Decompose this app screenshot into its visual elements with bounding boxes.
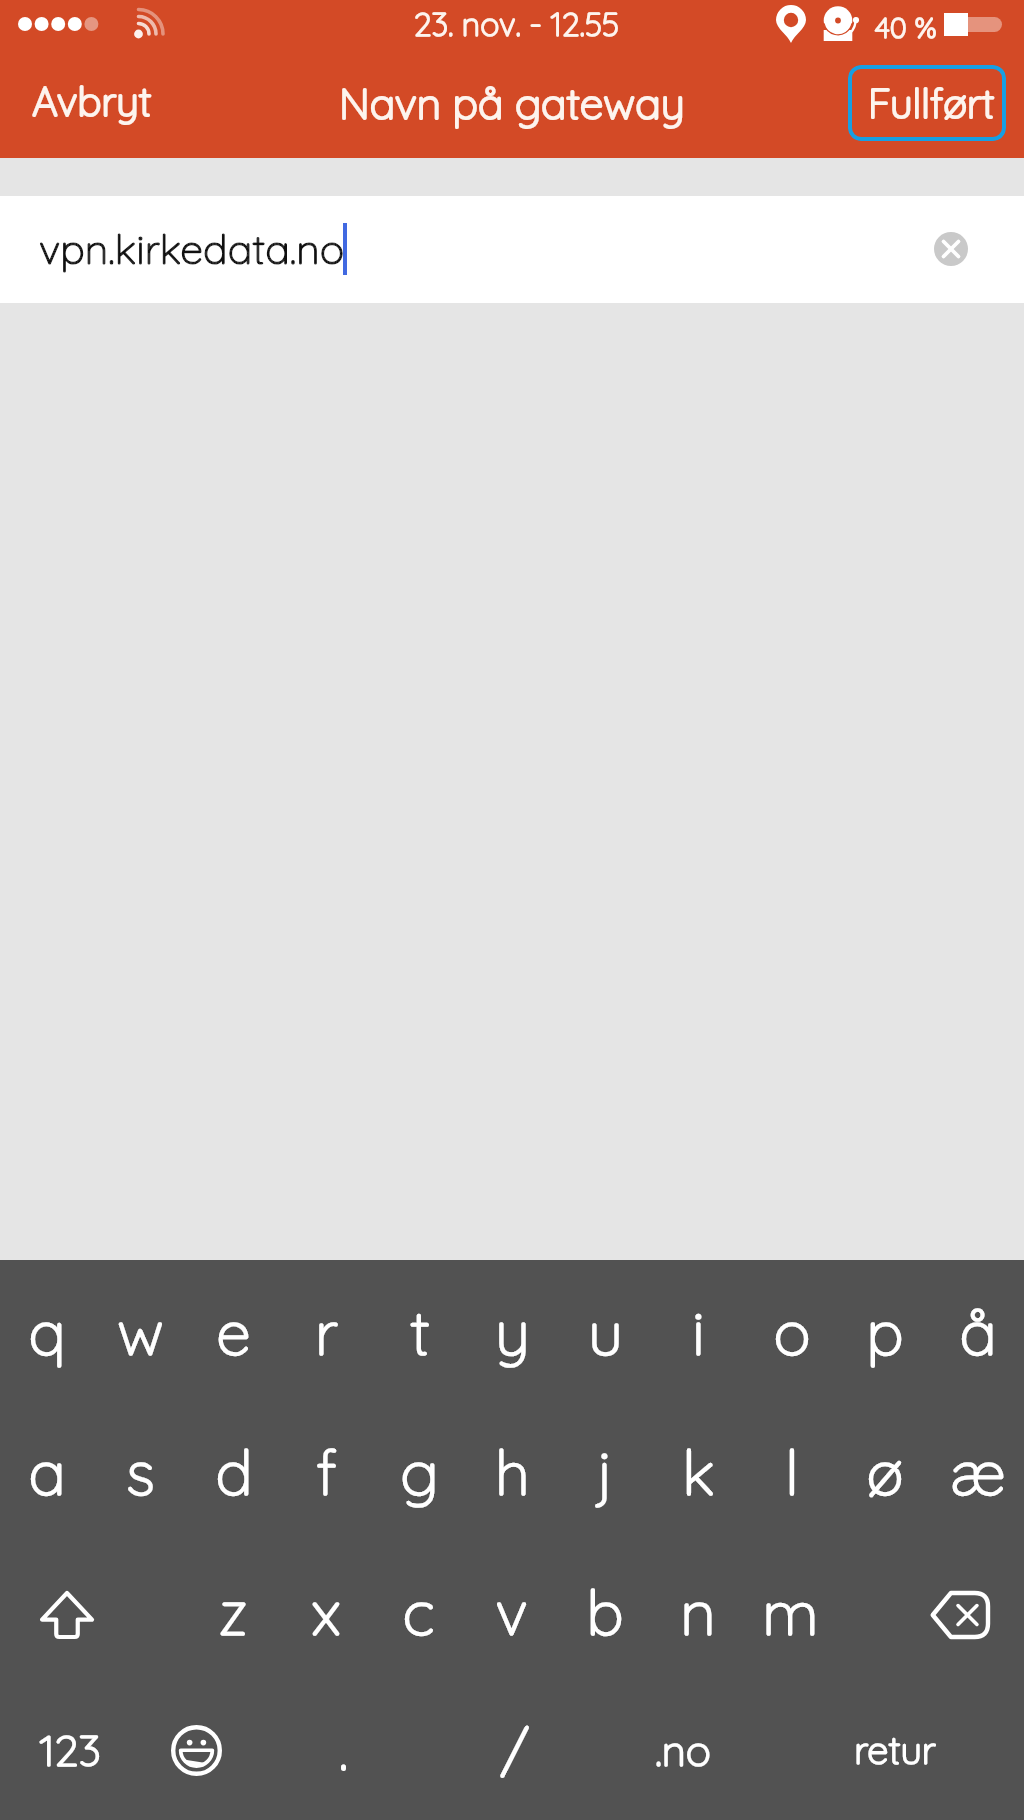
staticText: t — [410, 1293, 430, 1371]
staticText: j — [597, 1433, 614, 1511]
staticText: k — [682, 1433, 715, 1511]
button[interactable]: . — [283, 1680, 403, 1820]
button[interactable]: z — [186, 1542, 279, 1682]
button[interactable]: b — [558, 1542, 651, 1682]
button[interactable]: ø — [838, 1402, 931, 1542]
button[interactable]: s — [94, 1402, 187, 1542]
staticText: / — [501, 1716, 529, 1784]
staticText: .no — [655, 1724, 711, 1777]
staticText: Avbryt — [32, 76, 152, 126]
button[interactable]: g — [373, 1402, 466, 1542]
staticText: m — [762, 1573, 819, 1651]
button[interactable]: å — [931, 1262, 1024, 1402]
button[interactable]: k — [652, 1402, 745, 1542]
staticText: vpn.kirkedata.no — [39, 223, 345, 274]
button[interactable]: retur — [800, 1680, 990, 1820]
button[interactable]: h — [466, 1402, 559, 1542]
staticText: g — [400, 1433, 439, 1511]
staticText: å — [959, 1293, 997, 1371]
button[interactable]: q — [0, 1262, 94, 1402]
staticText: b — [586, 1573, 624, 1651]
staticText: 23. nov. - 12.55 — [414, 4, 619, 44]
staticText: o — [773, 1293, 811, 1371]
staticText: q — [28, 1293, 66, 1371]
button[interactable]: y — [466, 1262, 559, 1402]
staticText: x — [311, 1573, 341, 1651]
staticText: w — [117, 1293, 164, 1371]
staticText: retur — [854, 1726, 936, 1774]
staticText: b — [586, 1573, 624, 1651]
staticText: q — [28, 1293, 66, 1371]
staticText: a — [28, 1433, 66, 1511]
staticText: . — [339, 1716, 348, 1784]
staticText: r — [315, 1293, 338, 1371]
staticText: .no — [655, 1724, 711, 1777]
staticText: æ — [950, 1433, 1006, 1511]
button[interactable]: Emoji — [146, 1680, 246, 1820]
staticText: p — [866, 1293, 904, 1371]
button[interactable]: i — [652, 1262, 745, 1402]
staticText: Navn på gateway — [339, 76, 685, 129]
button[interactable]: m — [744, 1542, 837, 1682]
staticText: l — [785, 1433, 799, 1511]
staticText: c — [402, 1573, 435, 1651]
staticText: ø — [866, 1433, 904, 1511]
button[interactable]: Clear text — [923, 221, 979, 277]
button[interactable]: v — [465, 1542, 558, 1682]
button[interactable]: r — [280, 1262, 373, 1402]
staticText: å — [959, 1293, 997, 1371]
staticText: Avbryt — [32, 76, 152, 126]
staticText: v — [495, 1573, 528, 1651]
staticText: a — [28, 1433, 66, 1511]
button[interactable]: Shift — [0, 1540, 139, 1680]
staticText: e — [216, 1293, 251, 1371]
staticText: z — [218, 1573, 248, 1651]
staticText: w — [117, 1293, 164, 1371]
button[interactable]: j — [559, 1402, 652, 1542]
button[interactable]: .no — [610, 1680, 755, 1820]
button[interactable]: u — [559, 1262, 652, 1402]
staticText: g — [400, 1433, 439, 1511]
button[interactable]: t — [373, 1262, 466, 1402]
button[interactable]: 123 — [0, 1680, 139, 1820]
button[interactable]: Backspace — [885, 1540, 1024, 1680]
staticText: x — [311, 1573, 341, 1651]
staticText: m — [762, 1573, 819, 1651]
staticText: k — [682, 1433, 715, 1511]
staticText: f — [316, 1433, 337, 1511]
button[interactable]: / — [440, 1680, 590, 1820]
button[interactable]: æ — [931, 1402, 1024, 1542]
button[interactable]: l — [745, 1402, 838, 1542]
staticText: 40 % — [875, 9, 937, 45]
button[interactable]: d — [187, 1402, 280, 1542]
staticText: 123 — [39, 1723, 101, 1777]
staticText: ø — [866, 1433, 904, 1511]
staticText: i — [692, 1293, 705, 1371]
button[interactable]: a — [0, 1402, 94, 1542]
button[interactable]: n — [651, 1542, 744, 1682]
staticText: d — [215, 1433, 253, 1511]
staticText: h — [495, 1433, 530, 1511]
staticText: f — [316, 1433, 337, 1511]
button[interactable]: o — [745, 1262, 838, 1402]
button[interactable]: f — [280, 1402, 373, 1542]
staticText: n — [680, 1573, 716, 1651]
staticText: i — [692, 1293, 705, 1371]
staticText: Fullført — [868, 78, 995, 128]
staticText: s — [126, 1433, 155, 1511]
button[interactable]: x — [279, 1542, 372, 1682]
button[interactable]: w — [94, 1262, 187, 1402]
staticText: y — [495, 1293, 530, 1371]
staticText: 123 — [39, 1723, 101, 1777]
staticText: n — [680, 1573, 716, 1651]
staticText: e — [216, 1293, 251, 1371]
button[interactable]: Fullført — [848, 65, 1006, 141]
button[interactable]: Avbryt — [10, 66, 174, 136]
staticText: u — [588, 1293, 623, 1371]
staticText: 40 % — [875, 9, 937, 45]
button[interactable]: e — [187, 1262, 280, 1402]
staticText: r — [315, 1293, 338, 1371]
staticText: p — [866, 1293, 904, 1371]
button[interactable]: c — [372, 1542, 465, 1682]
button[interactable]: p — [838, 1262, 931, 1402]
